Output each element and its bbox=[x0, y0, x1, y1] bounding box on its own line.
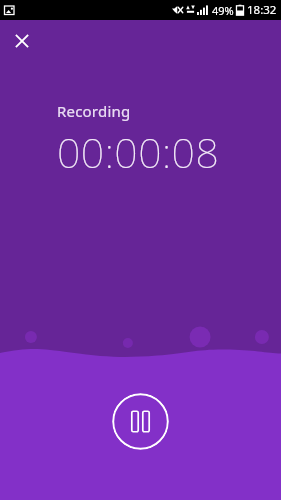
button[interactable]: Pause recording bbox=[112, 393, 169, 450]
staticText: Recording bbox=[57, 101, 131, 121]
staticText: 18:32 bbox=[247, 2, 277, 18]
button[interactable]: Close bbox=[6, 25, 38, 57]
staticText: 49% bbox=[212, 3, 234, 18]
staticText: 00:00:08 bbox=[57, 124, 220, 180]
